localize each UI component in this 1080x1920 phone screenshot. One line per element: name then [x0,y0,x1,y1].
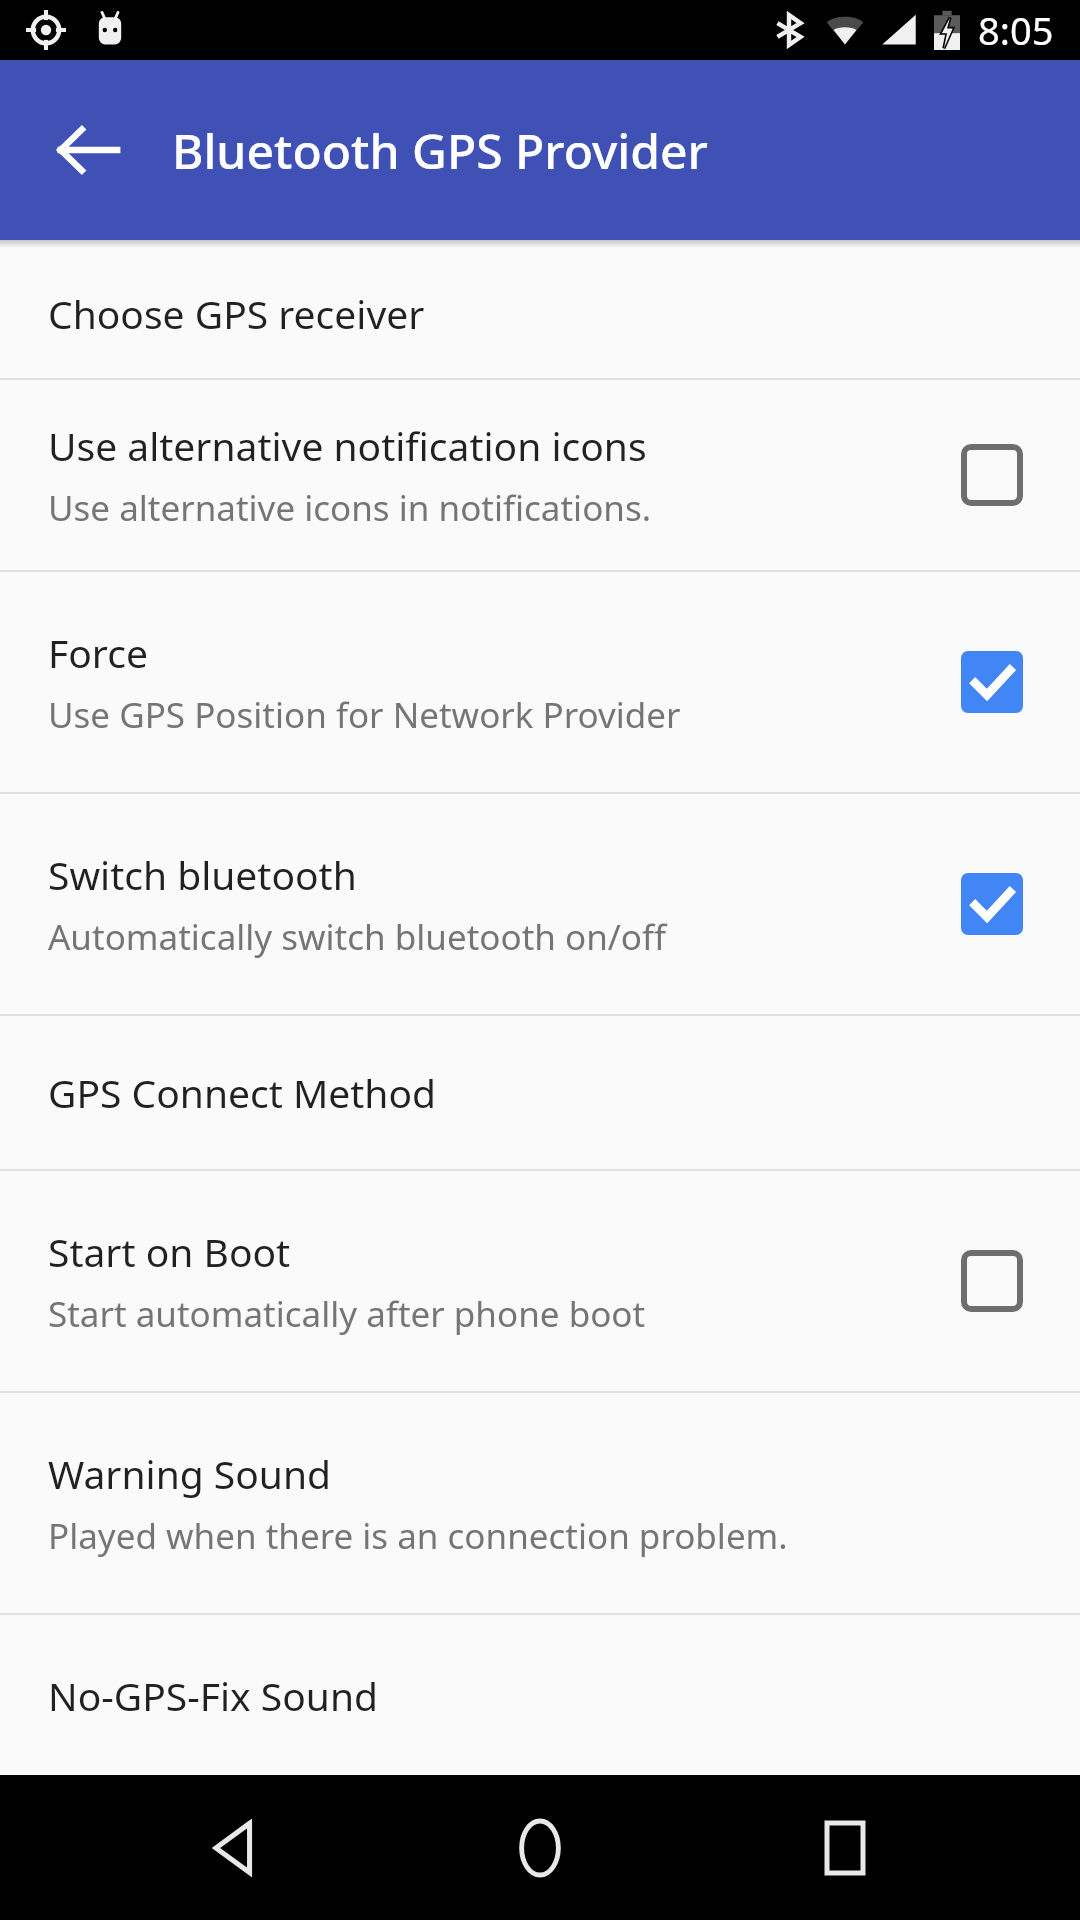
staticText: Choose GPS receiver [48,287,425,340]
button[interactable]: Use alternative notification icons [0,380,1080,570]
staticText: Use alternative icons in notifications. [48,484,652,532]
staticText: Warning Sound [48,1447,332,1500]
staticText: Use GPS Position for Network Provider [48,691,681,739]
button[interactable]: Unchecked [944,1233,1040,1329]
staticText: Automatically switch bluetooth on/off [48,913,667,961]
button[interactable]: Checked [944,634,1040,730]
button[interactable]: Unchecked [944,427,1040,523]
staticText: Force [48,626,148,679]
staticText: 8:05 [978,4,1054,56]
button[interactable]: Checked [944,856,1040,952]
staticText: Start automatically after phone boot [48,1290,646,1338]
button[interactable]: GPS Connect Method [0,1016,1080,1169]
button[interactable]: Switch bluetooth [0,794,1080,1014]
button[interactable]: Home [470,1778,610,1918]
button[interactable]: Recent apps [775,1778,915,1918]
button[interactable]: Start on Boot [0,1171,1080,1391]
staticText: Start on Boot [48,1225,291,1278]
button[interactable]: Warning Sound [0,1393,1080,1613]
button[interactable]: Choose GPS receiver [0,248,1080,378]
staticText: Played when there is an connection probl… [48,1512,788,1560]
staticText: Use alternative notification icons [48,419,647,472]
button[interactable]: Back [40,102,136,198]
staticText: No-GPS-Fix Sound [48,1669,379,1722]
staticText: GPS Connect Method [48,1066,437,1119]
button[interactable]: No-GPS-Fix Sound [0,1615,1080,1775]
staticText: Switch bluetooth [48,848,357,901]
button[interactable]: Force [0,572,1080,792]
button[interactable]: Back [165,1778,305,1918]
staticText: Bluetooth GPS Provider [172,118,708,183]
